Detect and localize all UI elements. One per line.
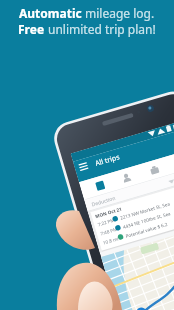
staticText: mileage log. — [85, 5, 155, 21]
staticText: unlimited trip plan! — [48, 21, 156, 37]
staticText: Free — [18, 21, 48, 37]
staticText: Automatic — [19, 5, 85, 21]
